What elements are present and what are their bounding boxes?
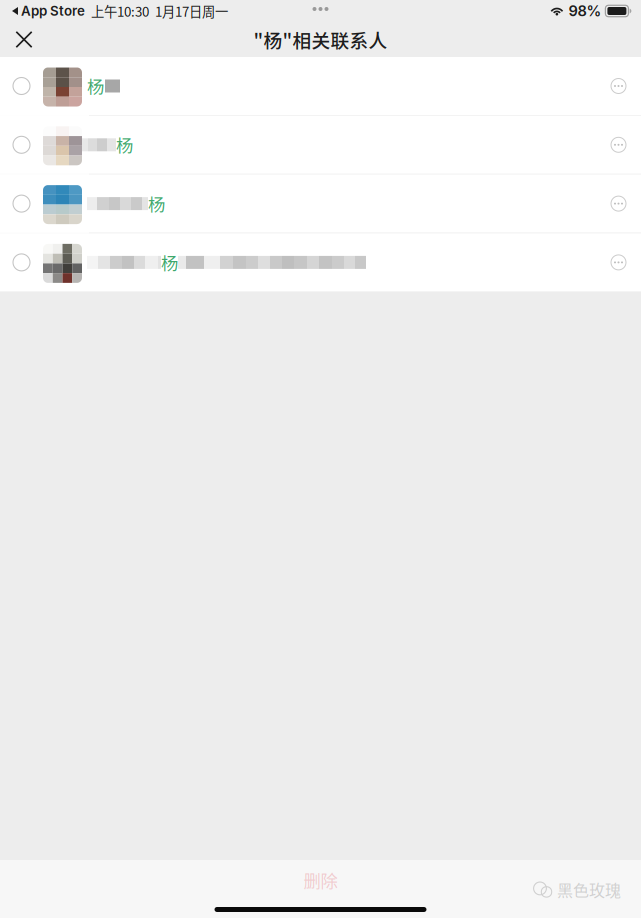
staticText: 杨 <box>87 73 104 99</box>
staticText: 98% <box>564 2 605 20</box>
button[interactable]: 关闭 <box>0 22 48 57</box>
staticText: 黑色玫瑰 <box>557 878 621 901</box>
staticText: 杨 <box>116 132 133 157</box>
staticText: 上午10:30 <box>85 1 149 21</box>
button[interactable]: 杨 <box>0 116 641 174</box>
staticText: 删除 <box>303 867 337 893</box>
button[interactable]: 杨 <box>0 57 641 115</box>
staticText: "杨"相关联系人 <box>253 26 387 53</box>
staticText: 杨 <box>148 191 165 216</box>
button[interactable]: 杨 <box>0 175 641 233</box>
staticText: 杨 <box>161 250 178 275</box>
staticText: 1月17日周一 <box>149 1 228 21</box>
button[interactable]: 杨 <box>0 233 641 291</box>
button[interactable]: 删除 <box>260 867 380 893</box>
staticText: App Store <box>18 3 85 19</box>
